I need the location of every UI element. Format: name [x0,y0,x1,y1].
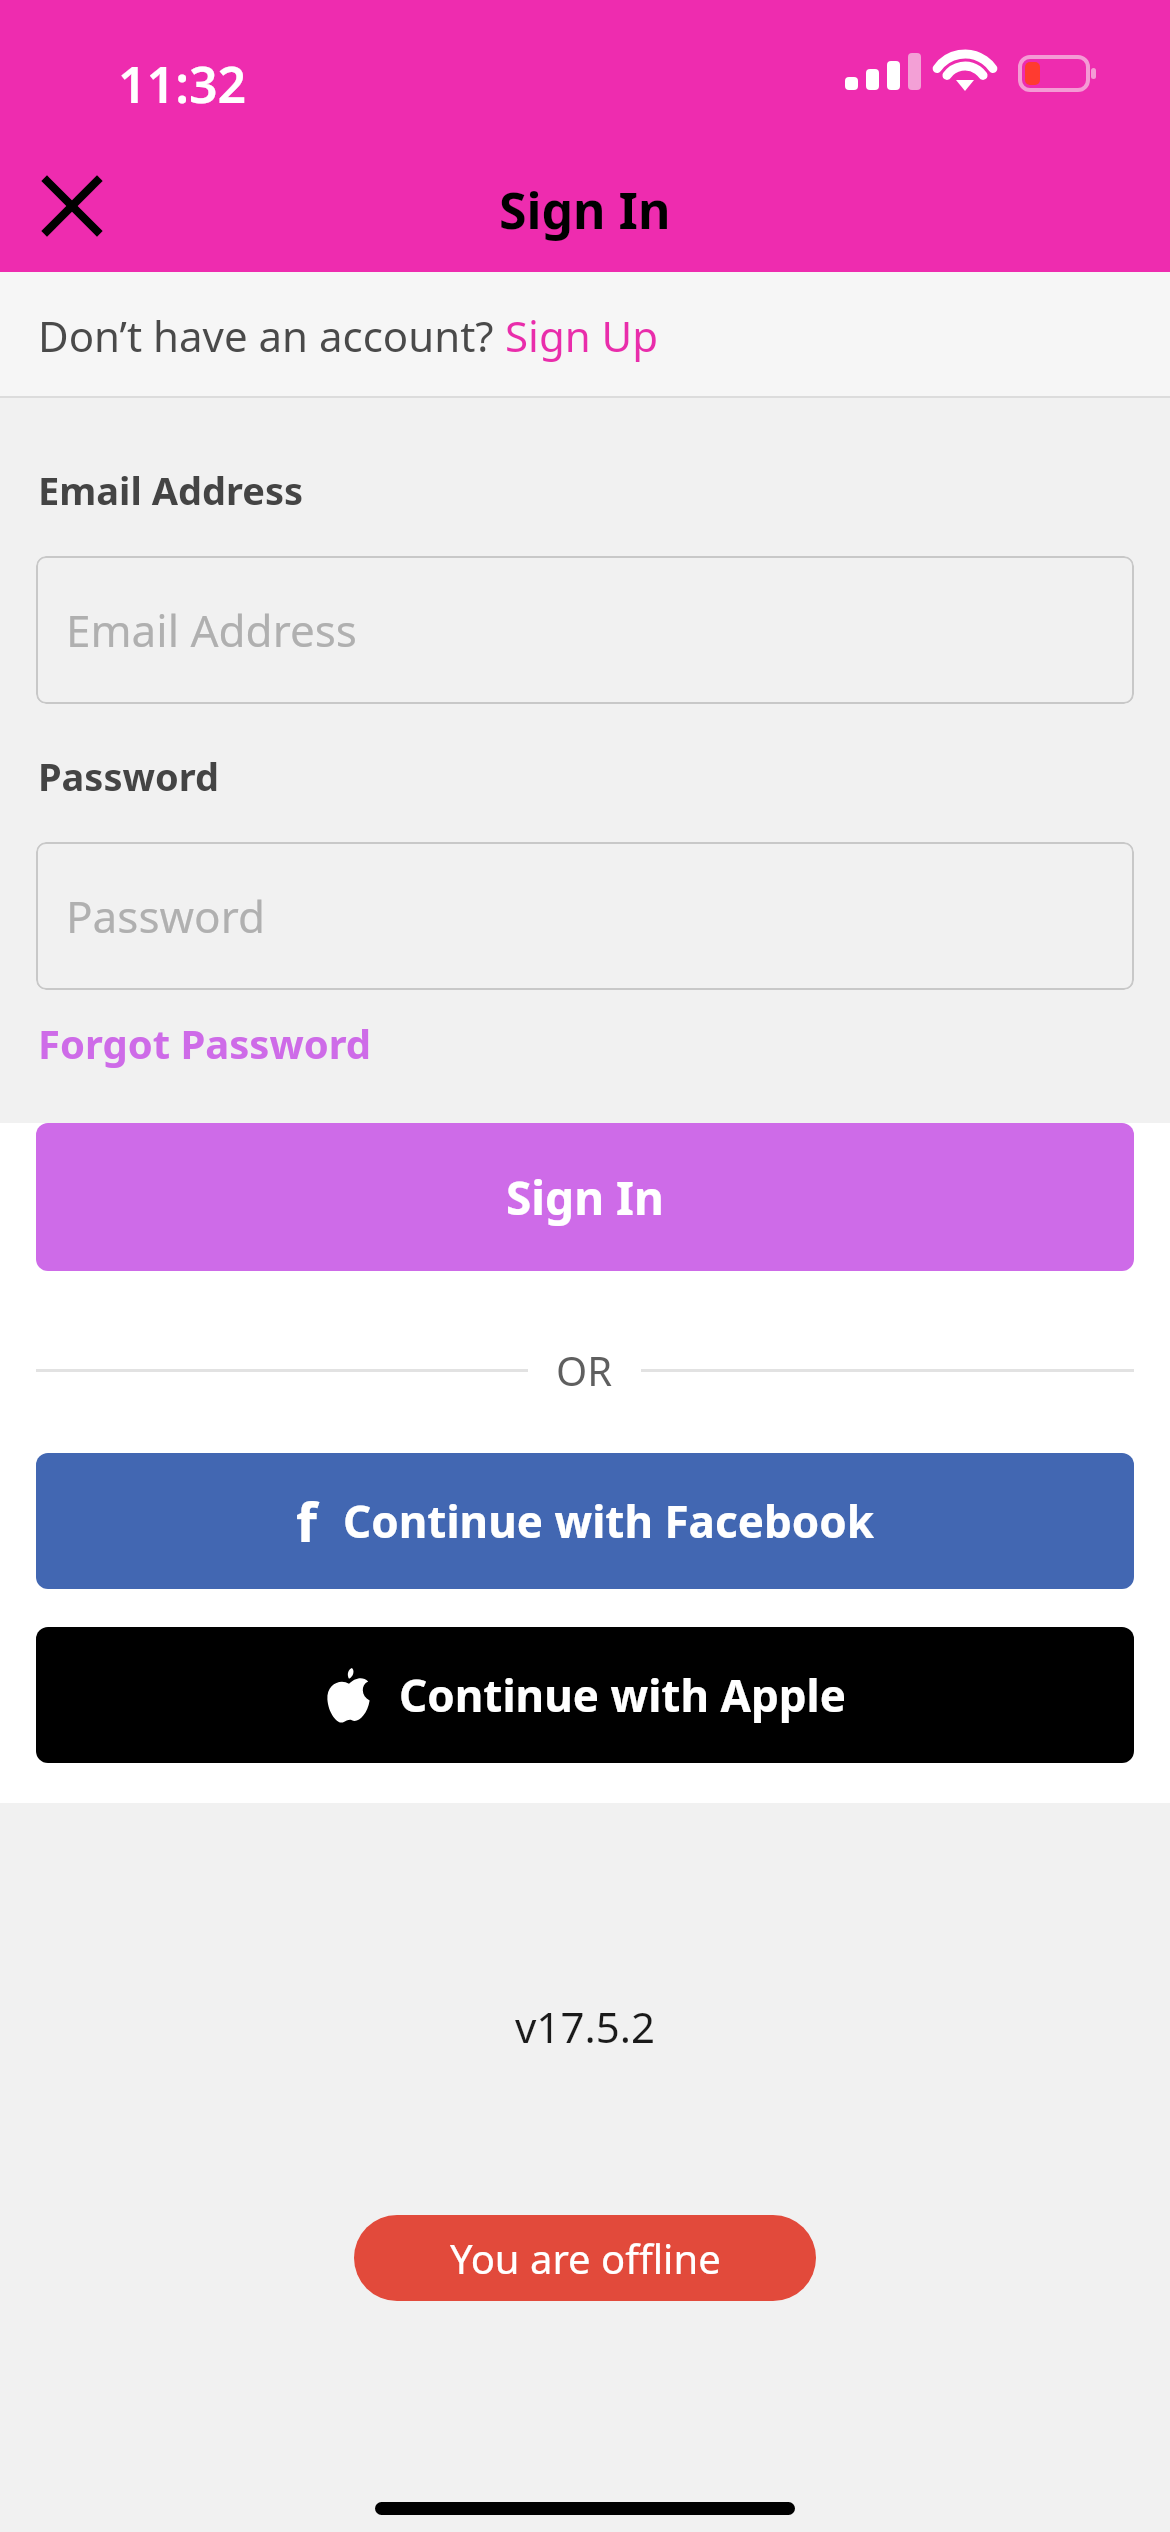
staticText: Sign In [506,1166,664,1229]
button[interactable]: Forgot Password [38,1016,372,1070]
button[interactable]: Continue with Apple [36,1627,1134,1763]
button[interactable]: You are offline [354,2215,816,2301]
staticText: Email Address [66,600,357,660]
button[interactable]: Password [36,842,1134,990]
staticText: Email Address [38,464,304,516]
staticText: Sign In [499,176,671,244]
staticText: Password [66,886,266,946]
staticText: 11:32 [118,50,247,118]
staticText: Forgot Password [38,1016,372,1070]
staticText: Password [38,750,220,802]
button[interactable]: Email Address [36,556,1134,704]
staticText: Continue with Apple [399,1665,846,1725]
staticText: Sign Up [505,307,659,364]
staticText: Continue with Facebook [343,1491,875,1551]
staticText: OR [556,1343,613,1397]
button[interactable]: Close [26,160,118,252]
staticText: Don’t have an account? [38,307,505,364]
staticText: You are offline [450,2231,721,2285]
button[interactable]: f [36,1453,1134,1589]
button[interactable]: Sign In [36,1123,1134,1271]
button[interactable]: Don’t have an account? [0,272,1170,398]
staticText: v17.5.2 [515,1998,655,2055]
staticText: f [296,1484,317,1558]
